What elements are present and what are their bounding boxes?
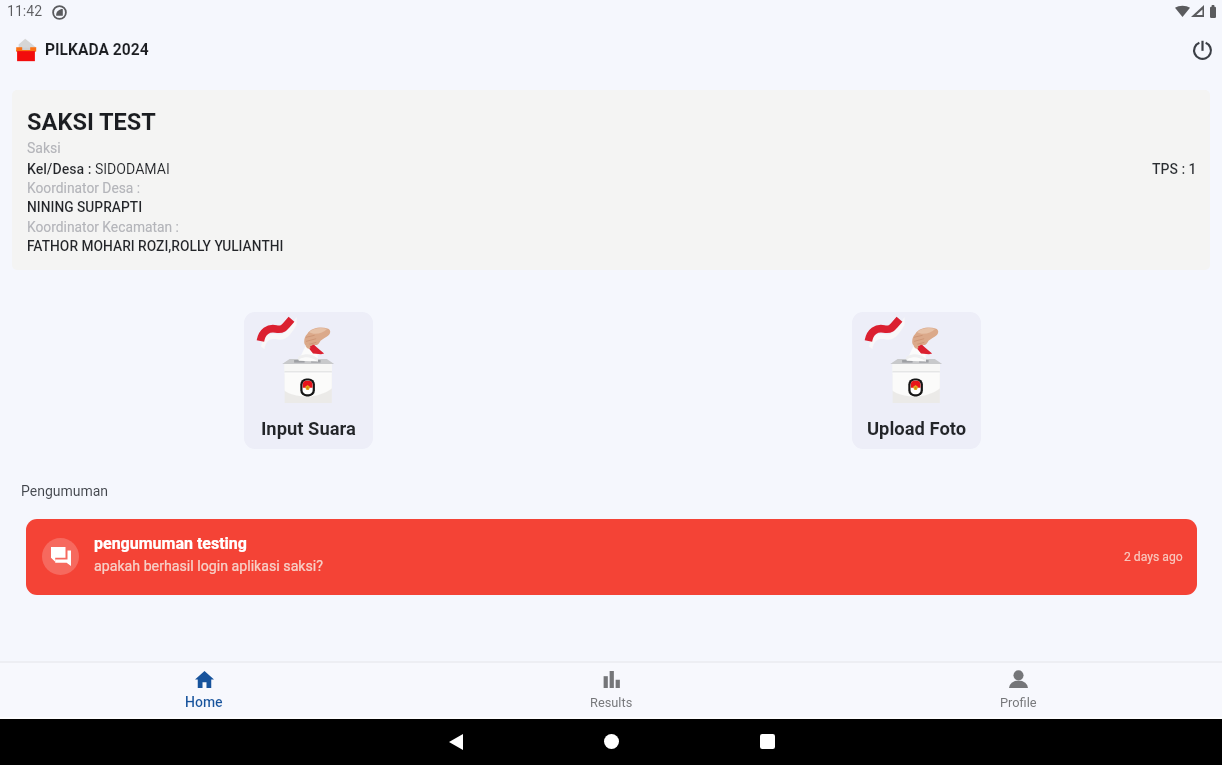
button[interactable]: Results — [408, 663, 815, 717]
staticText: Pengumuman — [21, 483, 109, 499]
staticText: Results — [590, 695, 633, 710]
staticText: FATHOR MOHARI ROZI,ROLLY YULIANTHI — [27, 238, 284, 254]
staticText: pengumuman testing — [94, 534, 247, 553]
staticText: apakah berhasil login aplikasi saksi? — [94, 558, 324, 575]
staticText: TPS : 1 — [1152, 161, 1197, 177]
staticText: NINING SUPRAPTI — [27, 199, 143, 215]
staticText: 2 days ago — [1124, 550, 1183, 564]
button[interactable]: pengumuman testing — [26, 519, 1197, 595]
button[interactable]: Profile — [815, 663, 1222, 717]
staticText: 11:42 — [7, 3, 43, 20]
button[interactable]: Home — [0, 663, 408, 717]
staticText: PILKADA 2024 — [45, 41, 149, 59]
staticText: Saksi — [27, 140, 61, 156]
staticText: Koordinator Kecamatan : — [27, 219, 179, 235]
button[interactable]: Back — [449, 734, 463, 750]
staticText: Koordinator Desa : — [27, 180, 141, 196]
staticText: Upload Foto — [867, 418, 967, 440]
button[interactable]: Recent apps — [760, 734, 775, 749]
staticText: Input Suara — [261, 418, 356, 440]
button[interactable]: Input Suara — [244, 312, 373, 449]
staticText: Kel/Desa : SIDODAMAI — [27, 161, 170, 178]
staticText: Home — [185, 694, 223, 710]
button[interactable]: Upload Foto — [852, 312, 981, 449]
button[interactable]: Logout — [1187, 38, 1217, 62]
staticText: Profile — [1000, 695, 1037, 710]
staticText: SAKSI TEST — [27, 108, 156, 136]
button[interactable]: Home — [604, 734, 619, 749]
